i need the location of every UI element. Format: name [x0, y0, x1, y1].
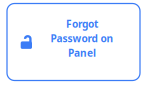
staticText: Forgot Password on Panel — [50, 17, 113, 60]
button[interactable]: Forgot Password on Panel — [7, 3, 140, 80]
